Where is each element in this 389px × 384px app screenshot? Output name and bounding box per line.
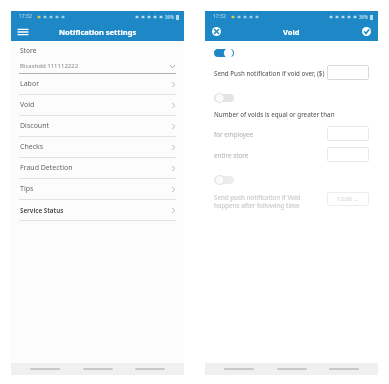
button[interactable]: 12:00 ... xyxy=(327,192,369,206)
button[interactable]: Cancel xyxy=(209,24,224,39)
button[interactable]: Value input xyxy=(327,65,369,80)
staticText: 12:00 ... xyxy=(337,195,359,203)
button[interactable]: Back xyxy=(26,365,64,373)
staticText: Notification settings xyxy=(59,27,137,37)
button[interactable]: Void xyxy=(11,95,184,115)
staticText: 17:32 xyxy=(19,13,32,20)
button[interactable] xyxy=(214,93,234,103)
staticText: entire store xyxy=(214,151,327,159)
staticText: Send push notification if Void happens a… xyxy=(214,193,327,209)
button[interactable]: Fraud Detection xyxy=(11,158,184,178)
staticText: Void xyxy=(283,27,300,37)
staticText: for employee xyxy=(214,130,327,138)
button[interactable]: Tips xyxy=(11,179,184,199)
button[interactable]: Back xyxy=(220,365,258,373)
button[interactable]: Checks xyxy=(11,137,184,157)
staticText: Store xyxy=(20,46,37,55)
staticText: Bicashdd 111112222 xyxy=(20,62,170,70)
button[interactable]: Open navigation menu xyxy=(15,25,31,39)
button[interactable]: Save xyxy=(359,24,374,39)
staticText: Service Status xyxy=(20,206,172,214)
staticText: 17:32 xyxy=(213,13,226,20)
staticText: 36% xyxy=(359,14,368,20)
button[interactable] xyxy=(214,175,234,185)
button[interactable]: Bicashdd 111112222 xyxy=(11,62,184,70)
staticText: 36% xyxy=(165,14,174,20)
staticText: Send Push notification if void over, ($) xyxy=(214,69,327,77)
button[interactable]: Home xyxy=(79,365,117,373)
staticText: Fraud Detection xyxy=(20,163,172,173)
staticText: Discount xyxy=(20,121,172,131)
button[interactable] xyxy=(214,48,234,58)
button[interactable]: Recents xyxy=(131,365,169,373)
button[interactable]: Service Status xyxy=(11,200,184,220)
staticText: Labor xyxy=(20,79,172,89)
button[interactable]: Value input xyxy=(327,126,369,141)
button[interactable]: Home xyxy=(273,365,311,373)
staticText: Tips xyxy=(20,184,172,194)
staticText: Number of voids is equal or greater than xyxy=(214,110,335,118)
button[interactable]: Recents xyxy=(325,365,363,373)
button[interactable]: Discount xyxy=(11,116,184,136)
button[interactable]: Labor xyxy=(11,74,184,94)
staticText: Void xyxy=(20,100,172,110)
staticText: Checks xyxy=(20,142,172,152)
button[interactable]: Value input xyxy=(327,147,369,162)
